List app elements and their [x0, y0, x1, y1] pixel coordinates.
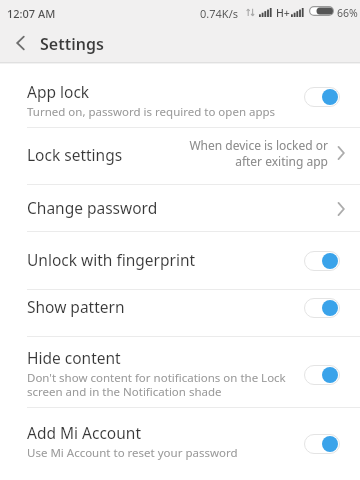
staticText: When device is locked or after exiting a… — [0, 137, 328, 169]
button[interactable] — [304, 434, 340, 454]
button[interactable]: Add Mi Account — [0, 408, 360, 480]
button[interactable] — [304, 87, 340, 107]
button[interactable]: Change password — [0, 185, 360, 231]
staticText: Use Mi Account to reset your password — [27, 445, 238, 461]
staticText: Add Mi Account — [27, 422, 142, 443]
staticText: Settings — [40, 33, 104, 55]
staticText: 0.74K/s — [200, 6, 238, 21]
staticText: 12:07 AM — [7, 6, 56, 21]
staticText: Don't show content for notifications on … — [27, 370, 286, 400]
button[interactable]: Show pattern — [0, 290, 360, 336]
staticText: Change password — [27, 197, 158, 218]
staticText: App lock — [27, 81, 90, 102]
button[interactable]: Lock settings — [0, 128, 360, 184]
button[interactable] — [304, 365, 340, 385]
staticText: Lock settings — [27, 144, 123, 165]
button[interactable]: App lock — [0, 64, 360, 127]
button[interactable]: Hide content — [0, 337, 360, 407]
staticText: Unlock with fingerprint — [27, 249, 196, 270]
staticText: 66% — [337, 6, 358, 20]
staticText: Turned on, password is required to open … — [27, 104, 276, 120]
staticText: Show pattern — [27, 296, 125, 317]
button[interactable]: Unlock with fingerprint — [0, 232, 360, 289]
button[interactable] — [304, 298, 340, 318]
staticText: H+ — [276, 6, 290, 20]
button[interactable] — [304, 251, 340, 271]
button[interactable] — [2, 24, 38, 62]
staticText: Hide content — [27, 347, 121, 368]
